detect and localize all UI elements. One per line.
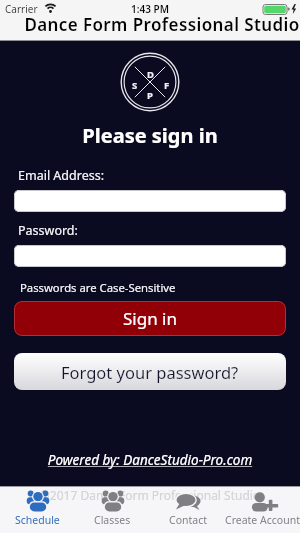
staticText: S bbox=[132, 79, 138, 92]
staticText: Create Account bbox=[225, 513, 300, 527]
staticText: Forgot your password? bbox=[61, 361, 239, 383]
staticText: P bbox=[147, 89, 153, 102]
staticText: 1:43 PM bbox=[0, 2, 300, 16]
staticText: Contact bbox=[169, 513, 207, 527]
button[interactable]: Contact bbox=[150, 486, 225, 533]
button[interactable] bbox=[14, 190, 286, 212]
staticText: Email Address: bbox=[18, 167, 105, 184]
staticText: F bbox=[164, 79, 170, 92]
button[interactable] bbox=[14, 245, 286, 267]
staticText: Passwords are Case-Sensitive bbox=[20, 280, 176, 295]
staticText: D bbox=[147, 68, 154, 81]
staticText: Dance Form Professional Studio bbox=[12, 13, 300, 36]
button[interactable]: Schedule bbox=[0, 486, 75, 533]
staticText: ©2017 Dance Form Professional Studio bbox=[0, 487, 300, 503]
staticText: Schedule bbox=[15, 513, 60, 527]
staticText: Sign in bbox=[123, 307, 177, 330]
staticText: Classes bbox=[94, 513, 131, 527]
staticText: Please sign in bbox=[0, 122, 300, 149]
button[interactable]: Create Account bbox=[225, 486, 300, 533]
button[interactable]: Forgot your password? bbox=[14, 353, 286, 390]
button[interactable]: Sign in bbox=[14, 301, 286, 336]
staticText: Password: bbox=[18, 222, 78, 239]
button[interactable]: Powered by: DanceStudio-Pro.com bbox=[0, 451, 300, 469]
staticText: Carrier bbox=[5, 2, 38, 16]
button[interactable]: Classes bbox=[75, 486, 150, 533]
